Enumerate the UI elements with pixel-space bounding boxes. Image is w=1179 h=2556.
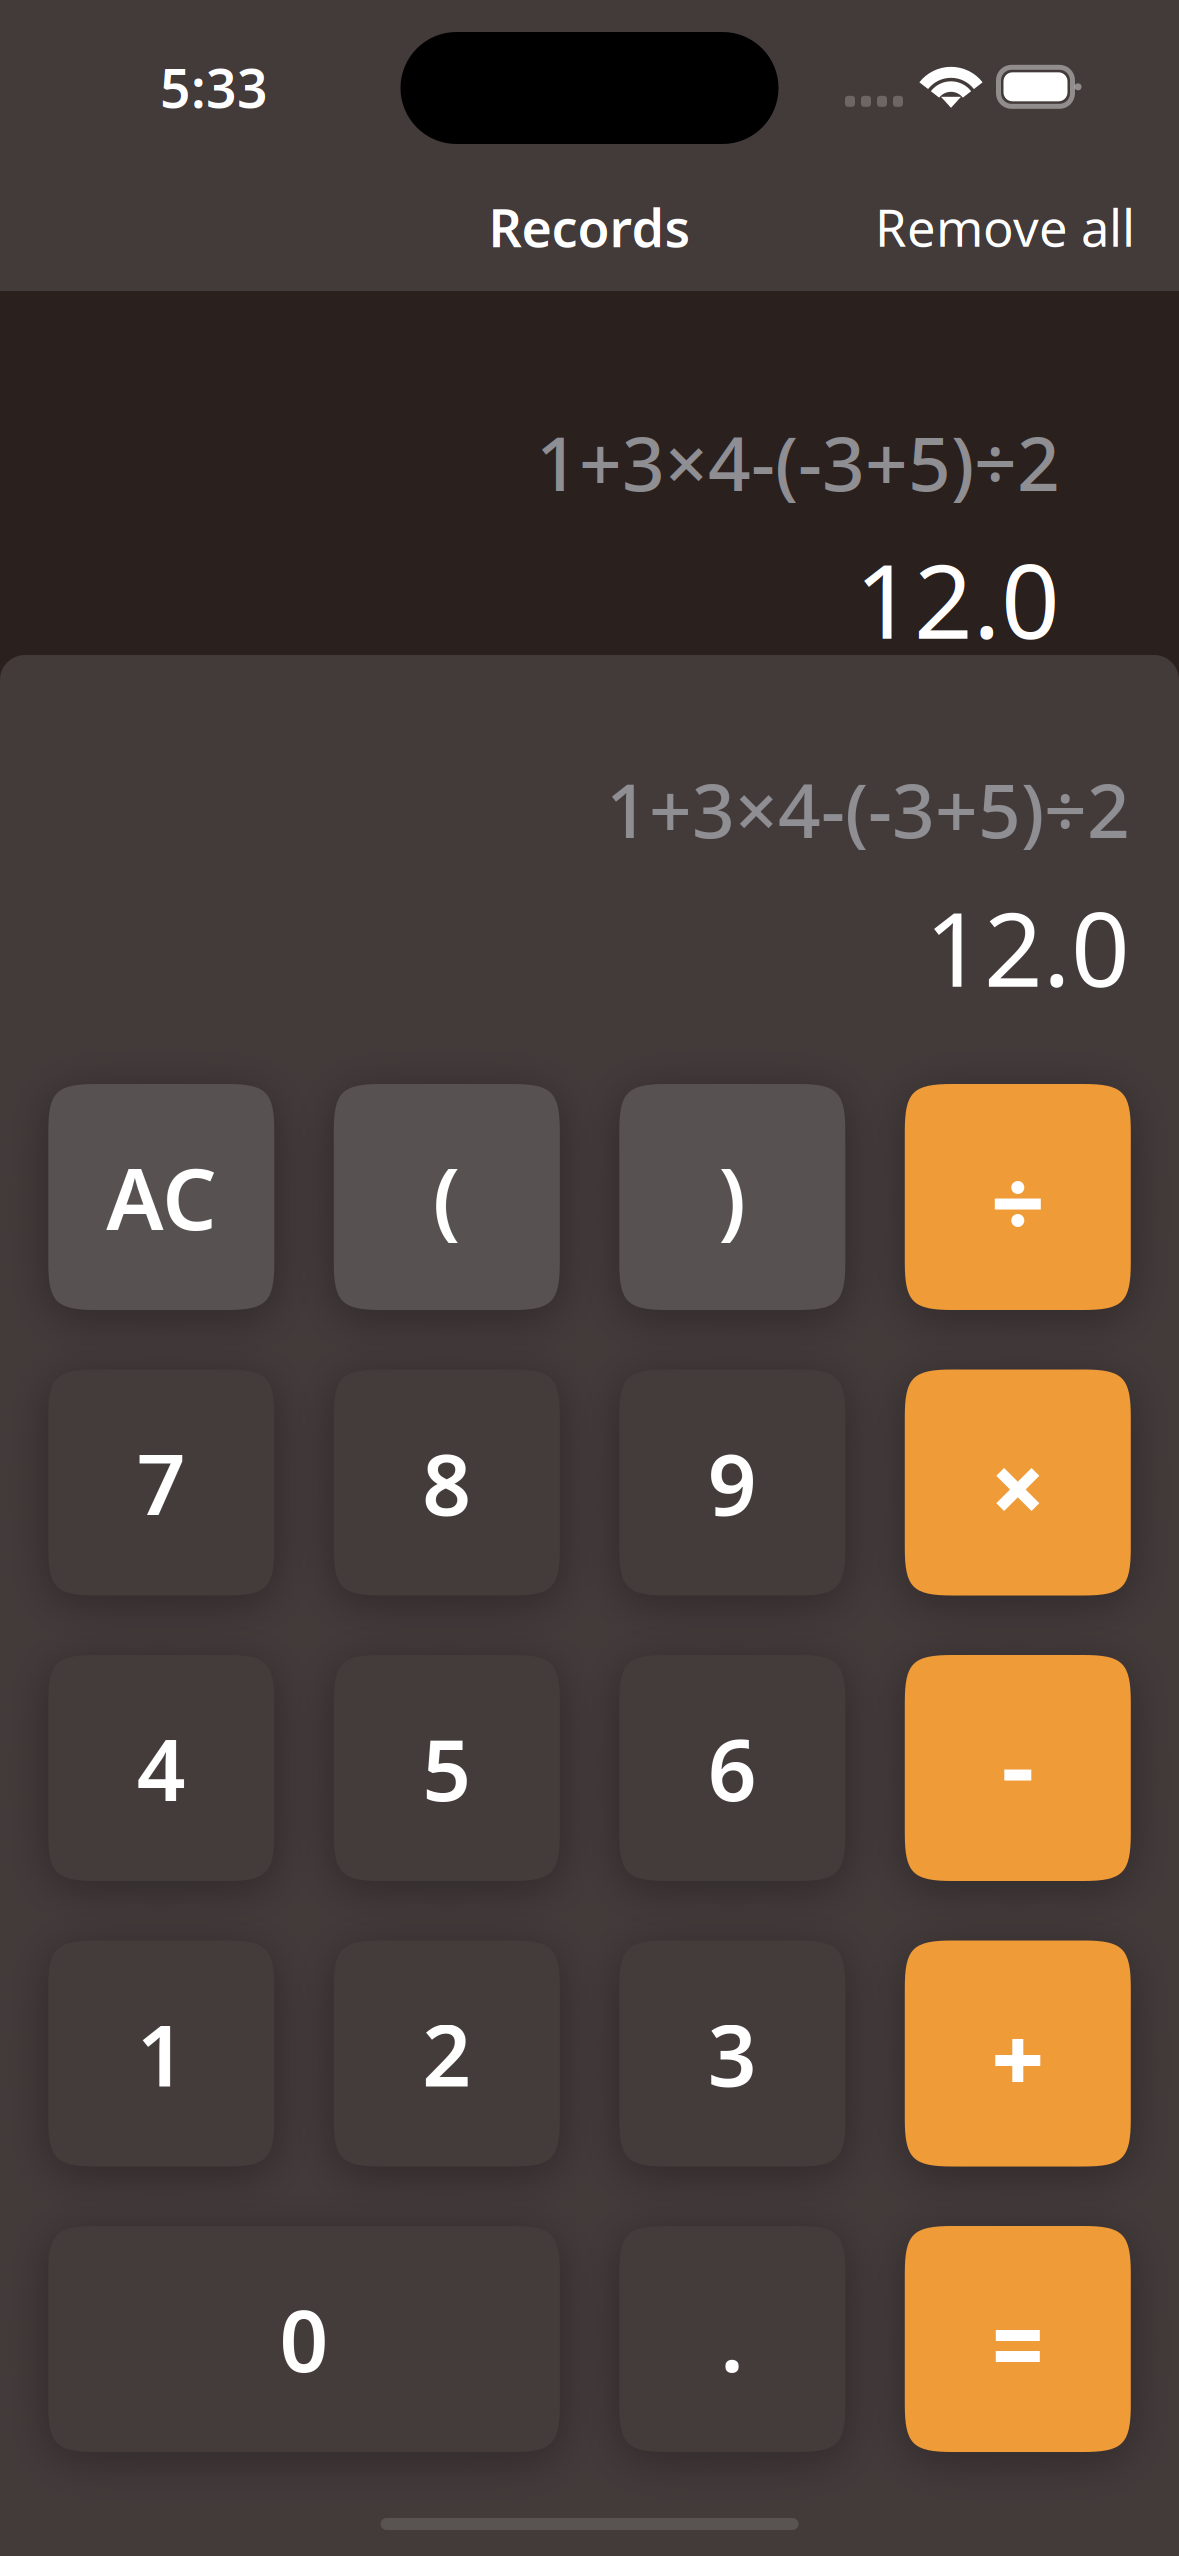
staticText: 1+3×4-(-3+5)÷2 [606, 759, 1130, 859]
staticText: 7 [137, 1426, 186, 1539]
button[interactable]: 1+3×4-(-3+5)÷2 [0, 412, 1179, 655]
staticText: . [720, 2282, 744, 2396]
button[interactable]: 4 [48, 1655, 274, 1881]
button[interactable]: 5 [334, 1655, 560, 1881]
staticText: 12.0 [855, 531, 1060, 667]
button[interactable]: 2 [334, 1940, 560, 2166]
staticText: 5:33 [160, 52, 268, 123]
button[interactable]: 1 [48, 1940, 274, 2166]
button[interactable]: Minus [905, 1655, 1131, 1881]
staticText: 3 [708, 1997, 757, 2110]
staticText: 0 [280, 2282, 329, 2396]
staticText: 1 [137, 1997, 186, 2110]
button[interactable]: AC [48, 1084, 274, 1310]
button[interactable]: ) [619, 1084, 845, 1310]
button[interactable]: Multiply [905, 1369, 1131, 1595]
staticText: ) [718, 1140, 746, 1254]
staticText: 9 [708, 1426, 757, 1539]
button[interactable]: 0 [48, 2226, 560, 2452]
button[interactable]: Remove all [859, 173, 1151, 281]
staticText: AC [106, 1140, 216, 1254]
staticText: 2 [422, 1997, 471, 2110]
staticText: 6 [708, 1711, 757, 1825]
staticText: 5 [422, 1711, 471, 1825]
staticText: 4 [137, 1711, 186, 1825]
button[interactable]: Equals [905, 2226, 1131, 2452]
button[interactable]: 3 [619, 1940, 845, 2166]
button[interactable]: 6 [619, 1655, 845, 1881]
button[interactable]: 7 [48, 1369, 274, 1595]
button[interactable]: 8 [334, 1369, 560, 1595]
button[interactable]: 9 [619, 1369, 845, 1595]
button[interactable]: . [619, 2226, 845, 2452]
staticText: Records [488, 192, 690, 262]
staticText: Remove all [875, 193, 1135, 261]
button[interactable]: Divide [905, 1084, 1131, 1310]
staticText: 12.0 [925, 879, 1130, 1015]
staticText: ( [433, 1140, 461, 1254]
button[interactable]: Plus [905, 1940, 1131, 2166]
staticText: 1+3×4-(-3+5)÷2 [536, 412, 1060, 512]
staticText: 8 [422, 1426, 471, 1539]
button[interactable]: ( [334, 1084, 560, 1310]
